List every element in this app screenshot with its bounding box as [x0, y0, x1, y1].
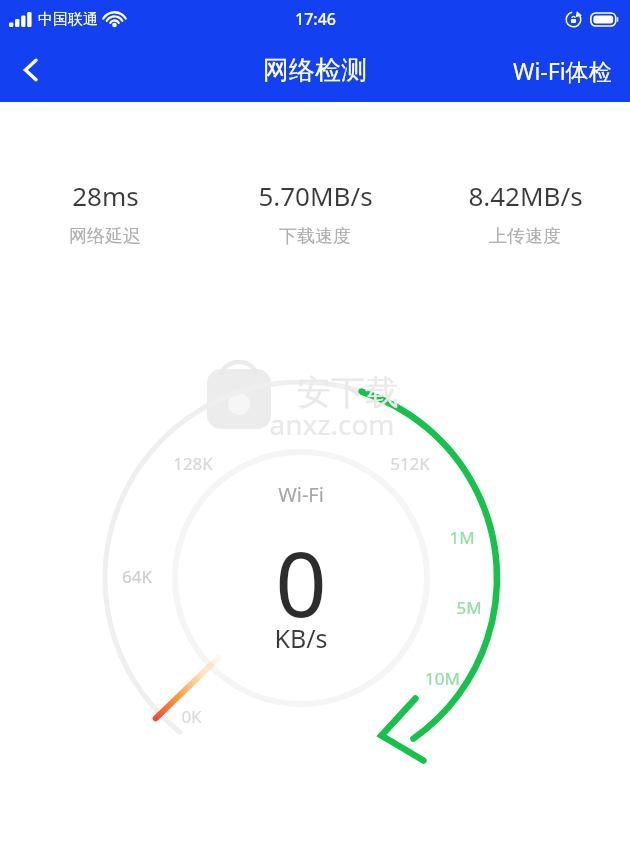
staticText: 512K [390, 452, 430, 475]
staticText: 5M [456, 596, 482, 619]
staticText: Wi-Fi体检 [513, 55, 612, 86]
staticText: 中国联通 [38, 10, 98, 29]
staticText: 网络检测 [263, 54, 367, 87]
button[interactable]: 28ms [0, 178, 210, 248]
staticText: 上传速度 [489, 225, 561, 248]
staticText: 网络延迟 [69, 225, 141, 248]
staticText: 0K [181, 705, 202, 728]
staticText: 128K [173, 452, 213, 475]
button[interactable]: 5.70MB/s [210, 178, 420, 248]
staticText: 1M [449, 526, 475, 549]
staticText: 8.42MB/s [468, 178, 583, 213]
staticText: 安下载 [297, 371, 399, 414]
staticText: KB/s [274, 621, 328, 655]
staticText: 0 [275, 521, 327, 644]
staticText: 28ms [72, 178, 139, 213]
button[interactable]: 返回 [4, 43, 58, 97]
staticText: Wi-Fi [278, 481, 324, 508]
staticText: anxz.com [269, 405, 395, 443]
staticText: 5.70MB/s [258, 178, 373, 213]
staticText: 10M [425, 667, 460, 690]
staticText: 64K [122, 565, 152, 588]
staticText: 下载速度 [279, 225, 351, 248]
staticText: 17:46 [295, 8, 336, 30]
button[interactable]: 8.42MB/s [420, 178, 630, 248]
button[interactable]: Wi-Fi体检 [507, 47, 618, 94]
